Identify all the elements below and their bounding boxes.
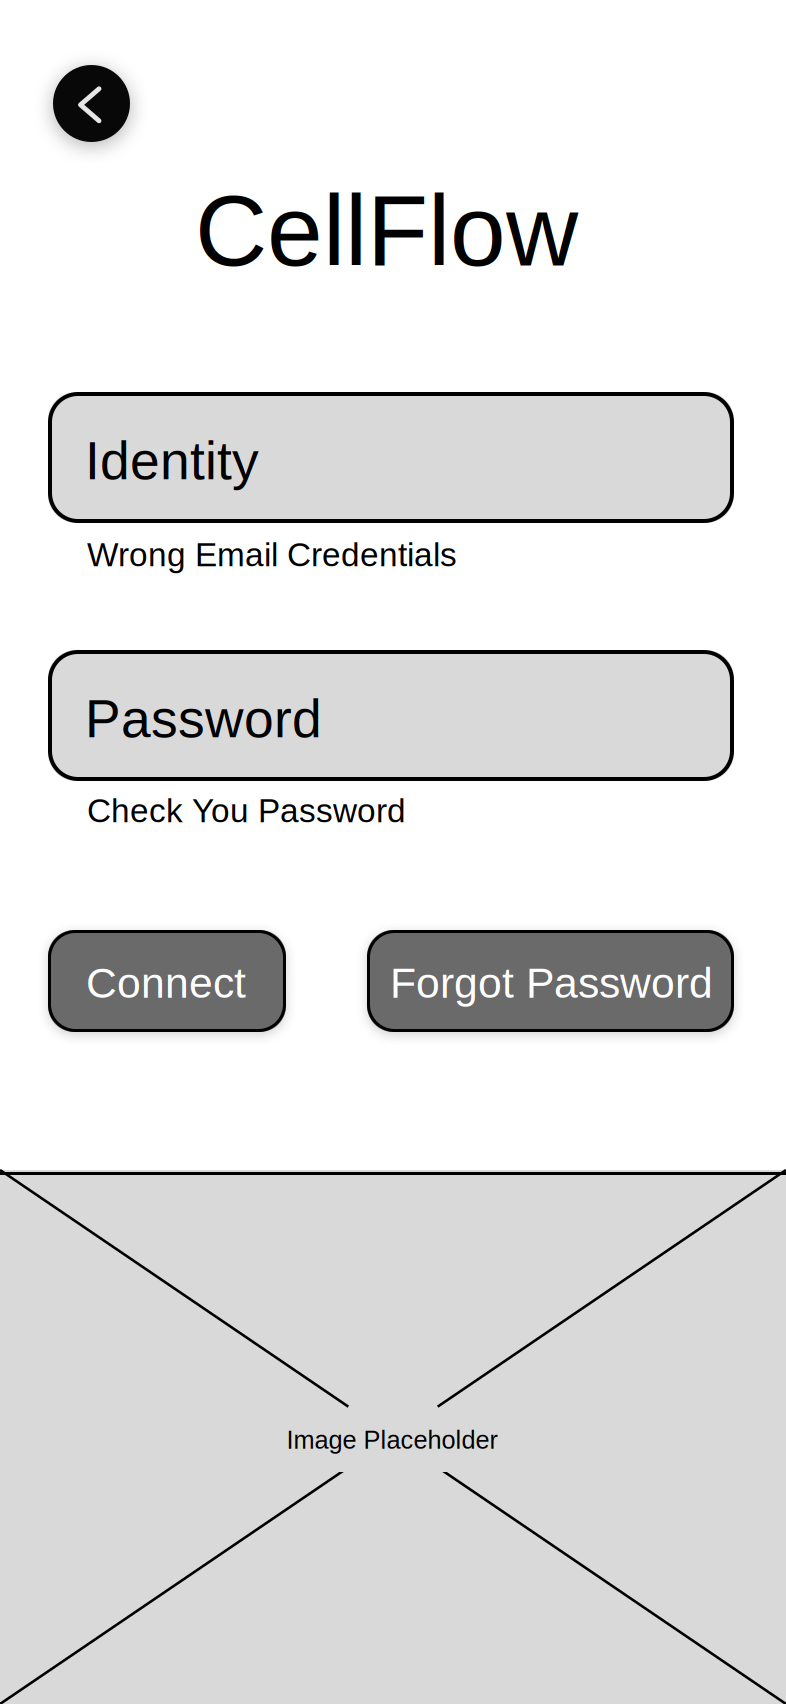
staticText: CellFlow [195, 175, 578, 287]
staticText: Identity [85, 431, 259, 491]
staticText: Check You Password [87, 792, 406, 829]
button[interactable]: Password [48, 650, 734, 781]
button[interactable]: Forgot Password [367, 930, 734, 1032]
button[interactable]: Identity [48, 392, 734, 523]
button[interactable]: Connect [48, 930, 286, 1032]
button[interactable]: Back [53, 65, 130, 142]
staticText: Wrong Email Credentials [87, 536, 457, 573]
staticText: Forgot Password [390, 959, 713, 1007]
staticText: Password [85, 689, 322, 749]
staticText: Image Placeholder [286, 1426, 497, 1454]
staticText: Connect [86, 959, 246, 1007]
